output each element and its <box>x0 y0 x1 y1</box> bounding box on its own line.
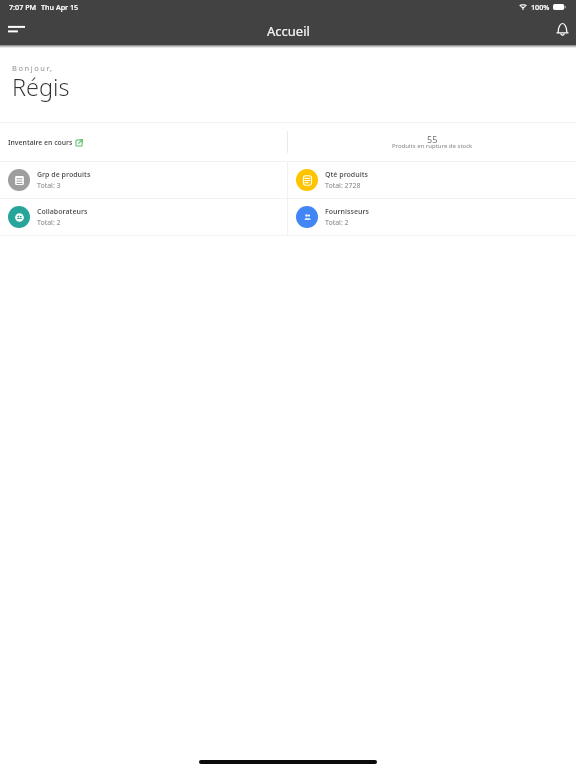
staticText: Bonjour, <box>12 63 54 73</box>
staticText: Total: 3 <box>37 181 61 191</box>
button[interactable]: Grp de produits <box>0 162 287 198</box>
staticText: Accueil <box>267 22 310 40</box>
button[interactable]: Notifications <box>548 18 576 40</box>
staticText: Régis <box>12 71 70 103</box>
staticText: 100% <box>531 2 550 12</box>
button[interactable]: Menu <box>0 18 32 40</box>
staticText: Total: 2728 <box>325 181 361 191</box>
staticText: Thu Apr 15 <box>41 2 79 12</box>
button[interactable]: Collaborateurs <box>0 199 287 235</box>
staticText: Total: 2 <box>37 218 61 228</box>
button[interactable]: Qté produits <box>288 162 576 198</box>
staticText: Total: 2 <box>325 218 349 228</box>
button[interactable]: 55 <box>288 123 576 161</box>
staticText: Produits en rupture de stock <box>392 142 473 150</box>
staticText: Grp de produits <box>37 170 91 180</box>
staticText: Inventaire en cours <box>8 138 73 147</box>
staticText: Collaborateurs <box>37 207 88 217</box>
staticText: Qté produits <box>325 170 368 180</box>
button[interactable]: Fournisseurs <box>288 199 576 235</box>
staticText: Fournisseurs <box>325 207 369 217</box>
staticText: 7:07 PM <box>9 2 37 12</box>
staticText: 55 <box>427 133 438 145</box>
button[interactable]: Inventaire en cours <box>0 123 287 161</box>
